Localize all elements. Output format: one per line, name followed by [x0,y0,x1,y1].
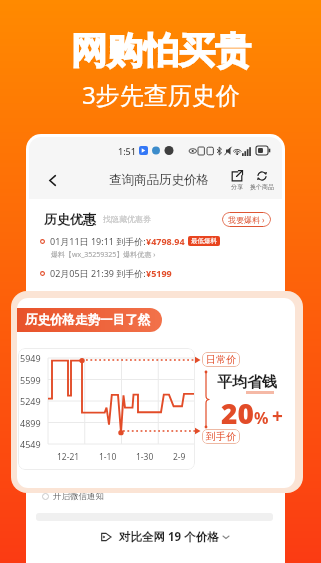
staticText: 爆料【wx_35259325】爆料优惠 › [51,250,156,260]
staticText: + [272,403,283,429]
button[interactable]: 换个商品 [250,170,274,191]
staticText: 5599 [20,374,41,386]
button[interactable]: Back [42,170,62,190]
staticText: 5949 [20,352,41,364]
button[interactable]: 我要爆料 › [222,212,271,227]
staticText: 12-21 [57,451,80,463]
staticText: 最低爆料 [191,237,217,245]
staticText: 20 [221,394,254,432]
staticText: 分享 [231,183,243,191]
staticText: % [254,407,269,429]
staticText: 2-9 [173,451,186,463]
staticText: 找隐藏优惠券 [103,214,151,224]
staticText: 网购怕买贵 [71,28,251,73]
staticText: 4899 [20,417,41,429]
staticText: 02月05日 21:39 到手价: [50,267,146,279]
staticText: 换个商品 [250,183,274,191]
staticText: 4549 [20,438,41,450]
staticText: 到手价 [206,430,236,443]
staticText: ¥5199 [146,267,172,279]
staticText: 历史价格走势一目了然 [25,312,150,328]
staticText: 平均省钱 [217,373,277,392]
staticText: 1-10 [99,451,117,463]
staticText: 1:51 [118,145,136,157]
staticText: 1-30 [136,451,154,463]
button[interactable]: 分享 [231,170,243,191]
staticText: 日常价 [206,353,236,366]
staticText: 查询商品历史价格 [109,172,209,188]
staticText: 历史优惠 [44,211,96,227]
staticText: 开启微信通知 [53,491,104,502]
staticText: 3步先查历史价 [82,78,240,111]
staticText: 01月11日 19:11 到手价: [50,235,146,247]
staticText: ¥4798.94 [146,235,185,247]
staticText: 5249 [20,395,41,407]
staticText: 我要爆料 › [228,214,265,225]
staticText: 对比全网 19 个价格 [119,529,219,545]
